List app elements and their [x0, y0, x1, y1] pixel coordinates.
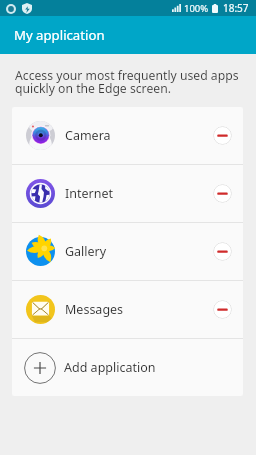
button[interactable]: Add application	[12, 339, 243, 396]
staticText: Gallery	[65, 243, 213, 260]
staticText: Camera	[65, 127, 213, 144]
staticText: 18:57	[223, 1, 249, 15]
button[interactable]: Remove	[213, 126, 232, 145]
button[interactable]: Internet	[12, 165, 243, 222]
staticText: Messages	[65, 301, 213, 318]
button[interactable]: Camera	[12, 107, 243, 164]
button[interactable]: Remove	[213, 184, 232, 203]
staticText: 100%	[184, 2, 209, 15]
button[interactable]: Remove	[213, 300, 232, 319]
staticText: My application	[14, 26, 105, 44]
button[interactable]: Gallery	[12, 223, 243, 280]
button[interactable]: Messages	[12, 281, 243, 338]
button[interactable]: Remove	[213, 242, 232, 261]
staticText: Internet	[65, 185, 213, 202]
staticText: Add application	[64, 359, 156, 376]
staticText: Access your most frequently used apps qu…	[15, 67, 239, 97]
